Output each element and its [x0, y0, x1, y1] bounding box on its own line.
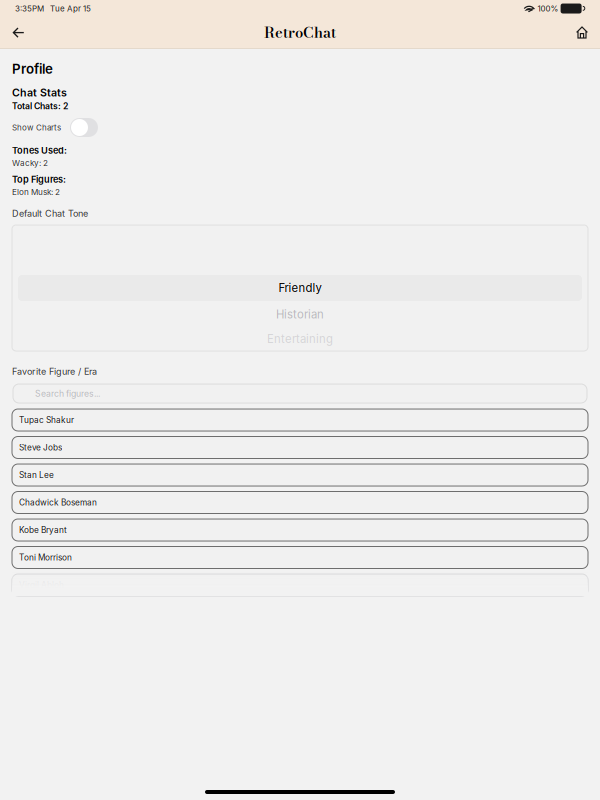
staticText: Toni Morrison — [19, 552, 72, 562]
staticText: Chadwick Boseman — [19, 497, 97, 507]
staticText: Tue Apr 15 — [44, 4, 91, 13]
button[interactable]: Toni Morrison — [12, 546, 588, 568]
staticText: Show Charts — [12, 123, 61, 132]
staticText: Entertaining — [267, 332, 333, 346]
button[interactable]: Chadwick Boseman — [12, 491, 588, 513]
staticText: 100% — [536, 4, 561, 13]
staticText: Kobe Bryant — [19, 525, 67, 535]
staticText: 3:35PM — [15, 4, 44, 13]
staticText: RetroChat — [264, 21, 336, 44]
button[interactable]: Home — [566, 19, 598, 46]
staticText: Historian — [276, 308, 324, 321]
staticText: Tupac Shakur — [19, 415, 74, 425]
staticText: Tones Used: — [12, 145, 67, 156]
button[interactable]: Friendly — [18, 275, 582, 301]
staticText: Elon Musk: 2 — [12, 187, 60, 197]
staticText: Friendly — [278, 281, 321, 295]
staticText: Profile — [12, 61, 53, 77]
staticText: Chat Stats — [12, 86, 67, 99]
button[interactable]: Back — [2, 19, 35, 45]
button[interactable]: Kobe Bryant — [12, 519, 588, 541]
button[interactable]: Show Charts toggle — [70, 118, 98, 137]
staticText: Top Figures: — [12, 174, 66, 185]
button[interactable]: Search figures... — [12, 384, 588, 403]
button[interactable]: Steve Jobs — [12, 436, 588, 458]
staticText: Search figures... — [35, 388, 100, 399]
staticText: Wacky: 2 — [12, 158, 48, 168]
staticText: Default Chat Tone — [12, 208, 88, 219]
button[interactable]: Stan Lee — [12, 464, 588, 486]
button[interactable]: Historian — [12, 301, 588, 328]
staticText: Stan Lee — [19, 470, 54, 480]
staticText: Favorite Figure / Era — [12, 366, 97, 377]
staticText: Steve Jobs — [19, 442, 62, 452]
button[interactable]: Tupac Shakur — [12, 409, 588, 431]
staticText: Total Chats: 2 — [12, 101, 68, 111]
